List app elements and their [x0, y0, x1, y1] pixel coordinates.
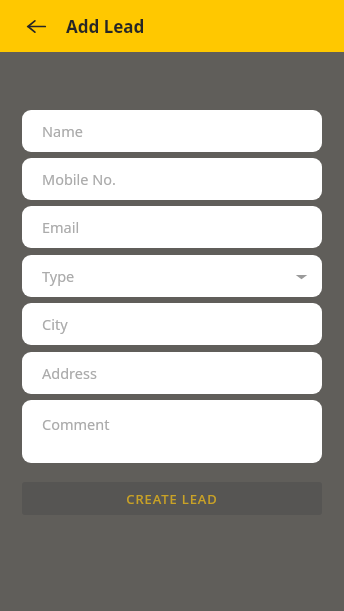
button[interactable]: Mobile No.: [22, 158, 322, 200]
button[interactable]: Type: [22, 255, 322, 297]
staticText: Comment: [42, 414, 110, 434]
staticText: City: [42, 314, 68, 334]
staticText: Name: [42, 121, 83, 141]
staticText: Address: [42, 363, 97, 383]
staticText: Email: [42, 217, 80, 237]
staticText: CREATE LEAD: [126, 490, 218, 508]
button[interactable]: CREATE LEAD: [22, 482, 322, 515]
staticText: Type: [42, 266, 75, 286]
staticText: Add Lead: [66, 15, 145, 38]
staticText: Mobile No.: [42, 169, 116, 189]
button[interactable]: Back: [14, 4, 58, 48]
button[interactable]: Email: [22, 206, 322, 248]
button[interactable]: City: [22, 303, 322, 345]
button[interactable]: Address: [22, 352, 322, 394]
button[interactable]: Comment: [22, 400, 322, 463]
button[interactable]: Name: [22, 110, 322, 152]
